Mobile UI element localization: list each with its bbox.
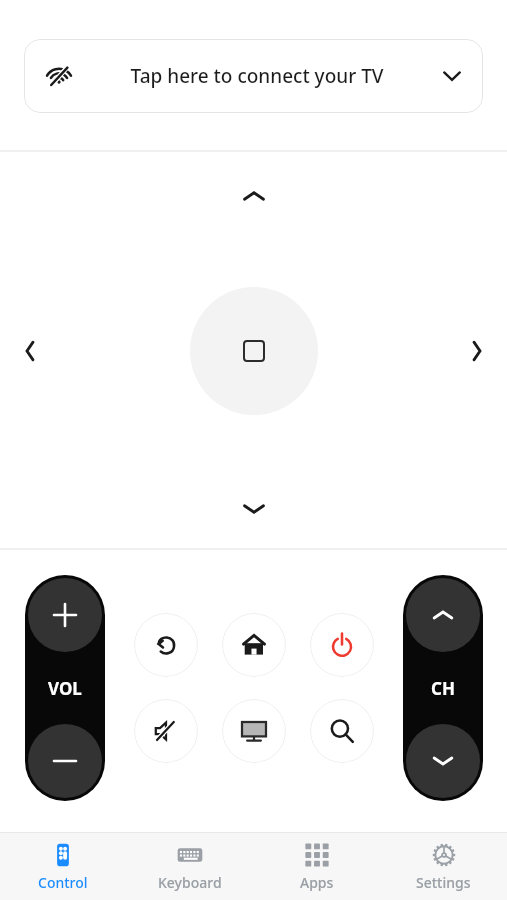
button[interactable]: Channel up [406, 578, 480, 652]
button[interactable]: Search [310, 699, 374, 763]
button[interactable]: Settings [380, 833, 507, 900]
button[interactable]: Volume down [28, 724, 102, 798]
button[interactable]: Power [310, 613, 374, 677]
button[interactable]: Input [222, 699, 286, 763]
button[interactable]: Down [226, 481, 282, 537]
button[interactable]: Control [0, 833, 126, 900]
button[interactable]: Select [190, 287, 318, 415]
button[interactable]: Left [2, 323, 58, 379]
button[interactable]: Right [449, 323, 505, 379]
staticText: Settings [416, 873, 471, 892]
button[interactable]: Up [226, 168, 282, 224]
staticText: Keyboard [158, 873, 222, 892]
staticText: Control [38, 873, 88, 892]
staticText: VOL [48, 677, 82, 700]
button[interactable]: Apps [253, 833, 380, 900]
button[interactable]: Mute [134, 699, 198, 763]
staticText: Tap here to connect your TV [130, 63, 384, 89]
button[interactable]: Back [134, 613, 198, 677]
button[interactable]: Tap here to connect your TV [24, 39, 483, 113]
button[interactable]: Volume up [28, 578, 102, 652]
button[interactable]: Home [222, 613, 286, 677]
button[interactable]: Keyboard [126, 833, 253, 900]
staticText: Apps [300, 873, 334, 892]
button[interactable]: Channel down [406, 724, 480, 798]
staticText: CH [431, 677, 455, 700]
